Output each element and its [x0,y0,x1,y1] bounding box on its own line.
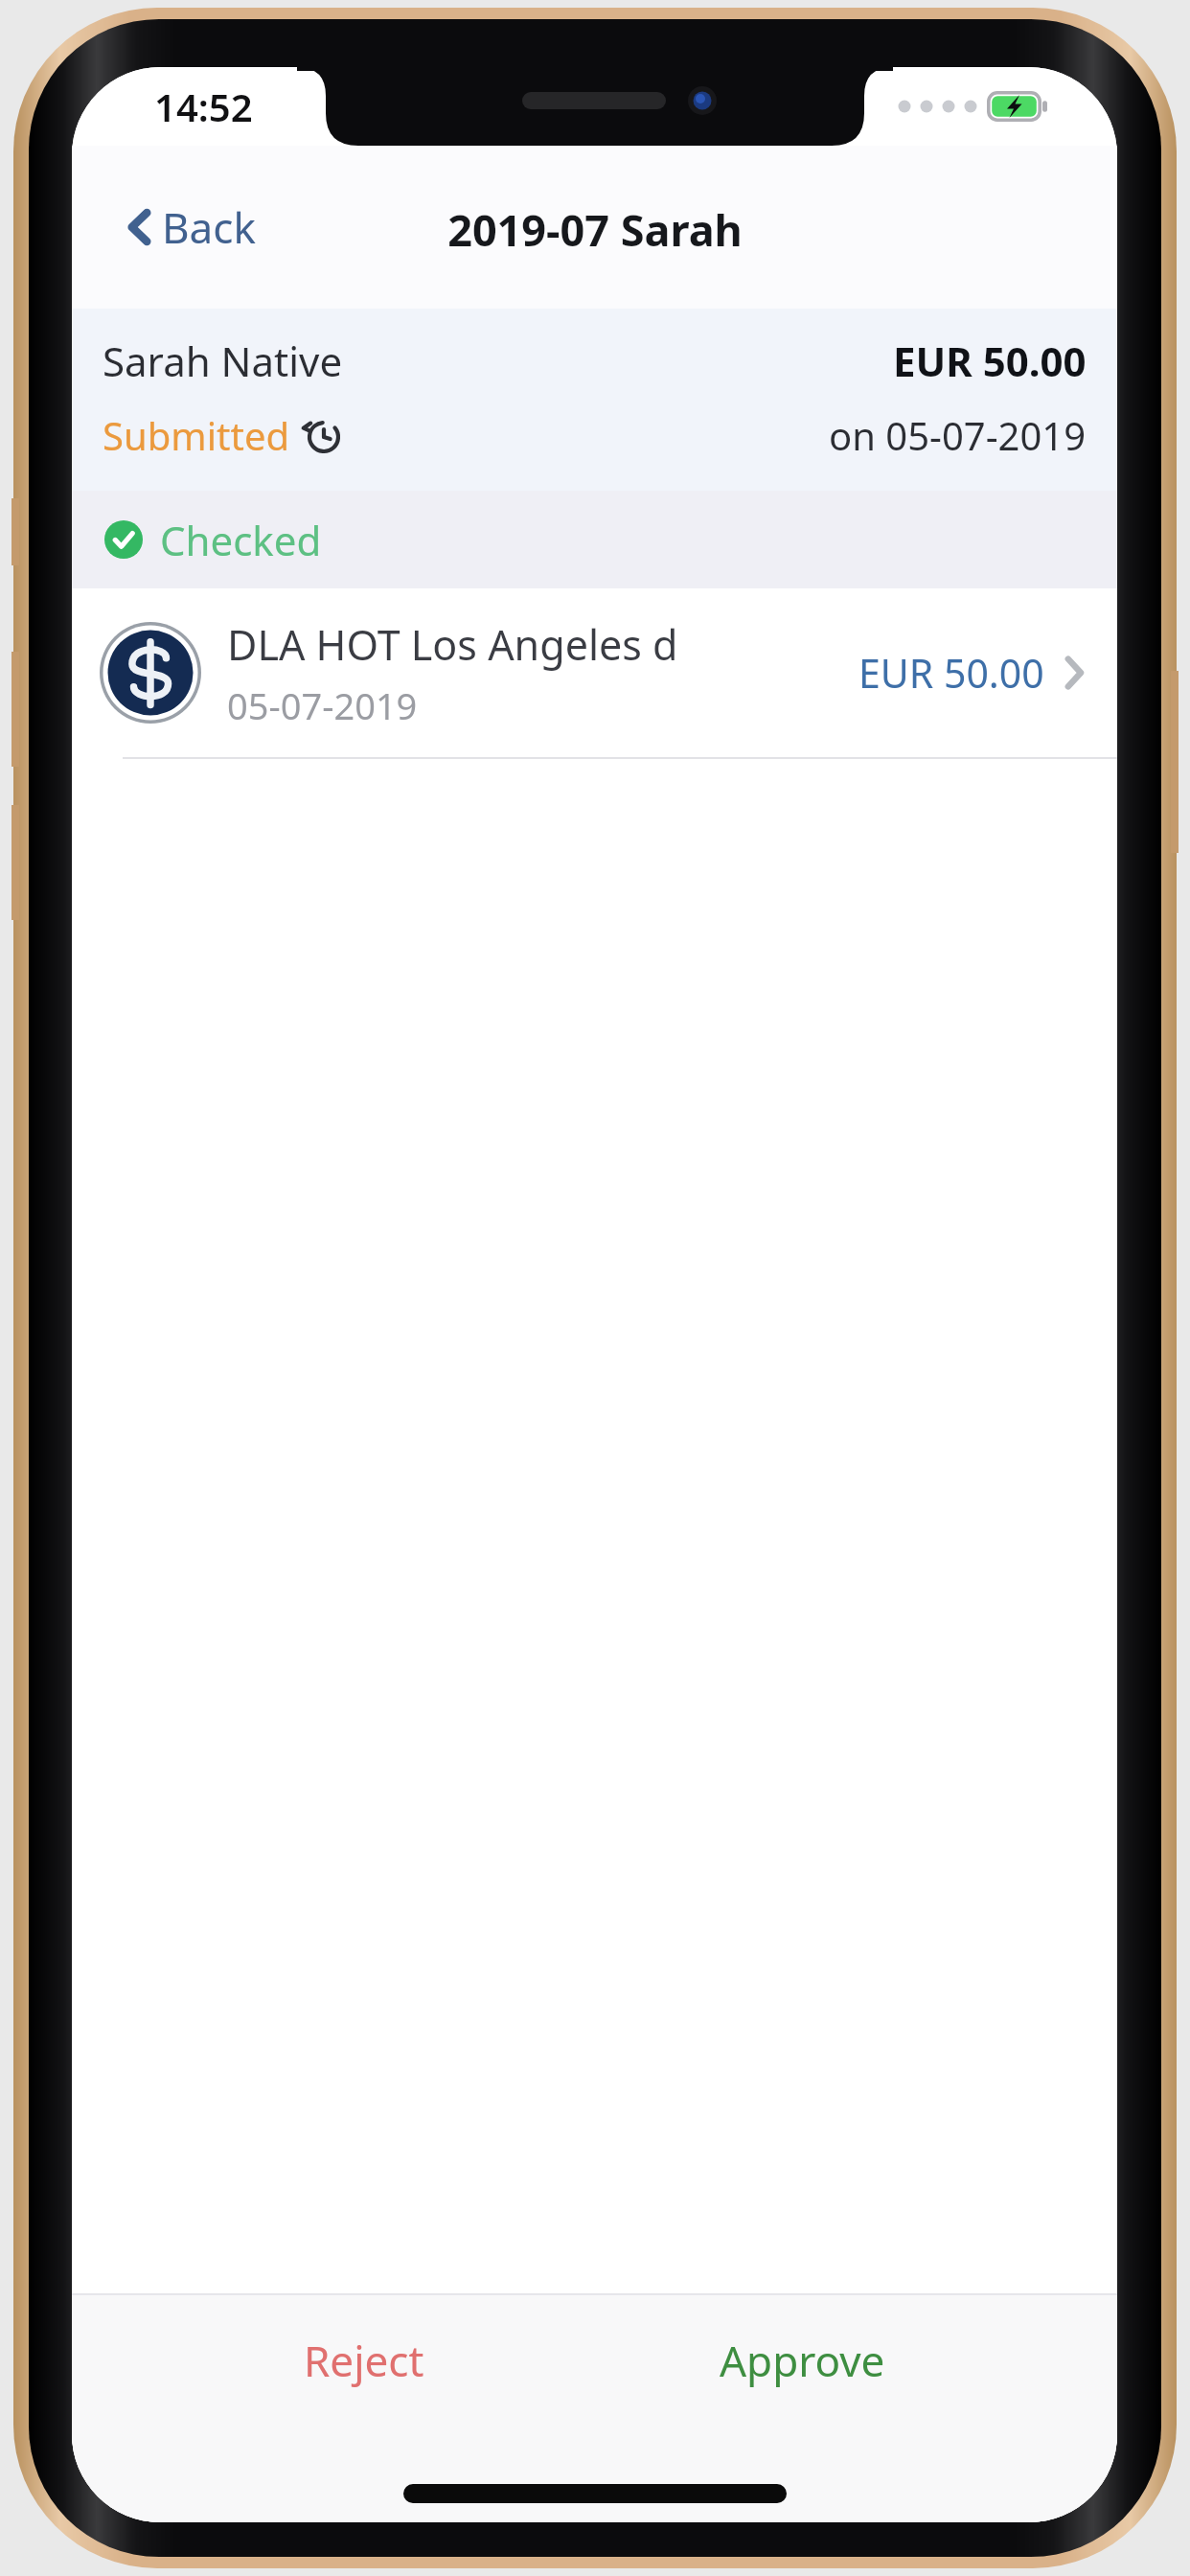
button[interactable]: Checked [72,491,1117,588]
button[interactable]: Sarah Native [72,309,1117,491]
button[interactable]: DLA HOT Los Angeles d [72,588,1117,757]
staticText: DLA HOT Los Angeles d [227,616,678,673]
staticText: Back [162,198,256,256]
button[interactable]: Back [116,185,267,269]
staticText: on 05-07-2019 [829,409,1087,461]
staticText: Submitted [103,409,290,461]
staticText: Checked [160,513,322,567]
button[interactable]: Reject [262,2314,467,2406]
staticText: EUR 50.00 [893,333,1087,388]
staticText: EUR 50.00 [858,646,1044,700]
other: Home indicator [403,2484,787,2503]
staticText: Reject [304,2332,424,2389]
staticText: 05-07-2019 [227,680,418,730]
staticText: 2019-07 Sarah [447,200,743,259]
button[interactable]: Approve [677,2314,927,2406]
staticText: Approve [720,2332,885,2389]
staticText: 14:52 [154,80,253,132]
staticText: Sarah Native [103,333,343,388]
